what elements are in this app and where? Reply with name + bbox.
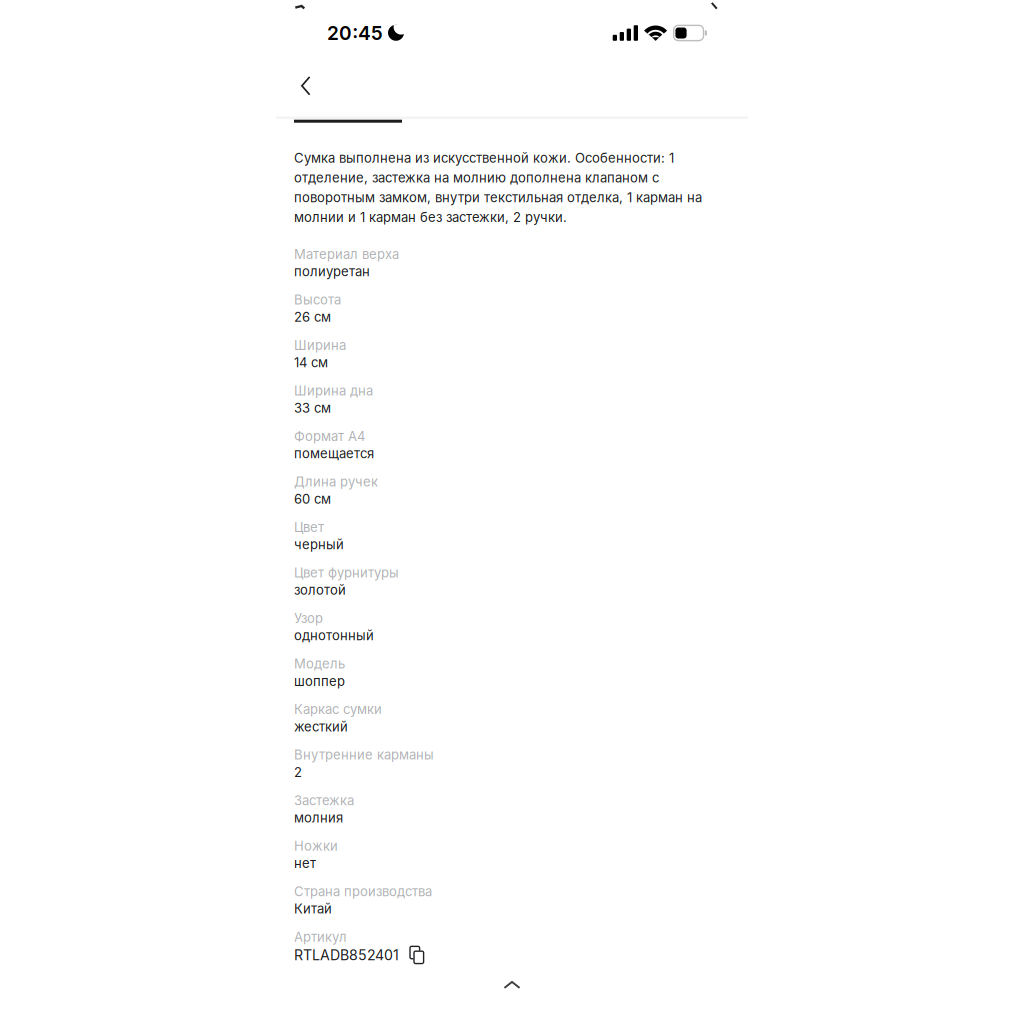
staticText: 33 см <box>294 400 331 416</box>
staticText: Узор <box>294 610 323 626</box>
staticText: Модель <box>294 656 345 672</box>
staticText: жесткий <box>294 719 348 734</box>
staticText: Цвет <box>294 519 324 535</box>
staticText: золотой <box>294 582 346 598</box>
staticText: 26 см <box>294 309 331 325</box>
staticText: Сумка выполнена из искусственной кожи. О… <box>294 150 702 225</box>
staticText: шоппер <box>294 673 345 689</box>
staticText: Застежка <box>294 792 354 808</box>
staticText: Формат A4 <box>294 428 365 444</box>
staticText: Каркас сумки <box>294 701 382 717</box>
staticText: 20:45 <box>327 21 383 45</box>
staticText: 14 см <box>294 355 328 370</box>
staticText: Артикул <box>294 929 347 945</box>
staticText: помещается <box>294 446 374 461</box>
staticText: полиуретан <box>294 263 370 279</box>
button[interactable]: RTLADB852401 <box>294 946 424 964</box>
staticText: однотонный <box>294 628 374 643</box>
staticText: молния <box>294 810 343 826</box>
staticText: Страна производства <box>294 883 432 899</box>
staticText: Китай <box>294 901 332 917</box>
staticText: Цвет фурнитуры <box>294 565 399 581</box>
button[interactable]: Свернуть характеристики <box>294 964 730 1006</box>
staticText: Материал верха <box>294 246 399 262</box>
staticText: Ширина <box>294 337 346 353</box>
staticText: Ножки <box>294 838 338 854</box>
staticText: 60 см <box>294 491 331 507</box>
staticText: черный <box>294 537 344 552</box>
button[interactable]: Характеристики <box>276 116 402 123</box>
staticText: нет <box>294 855 316 871</box>
staticText: 2 <box>294 764 302 780</box>
staticText: Длина ручек <box>294 474 378 490</box>
staticText: Ширина дна <box>294 383 373 399</box>
staticText: RTLADB852401 <box>294 947 399 964</box>
staticText: Высота <box>294 292 341 308</box>
button[interactable]: Назад <box>276 55 328 101</box>
staticText: Внутренние карманы <box>294 747 434 763</box>
